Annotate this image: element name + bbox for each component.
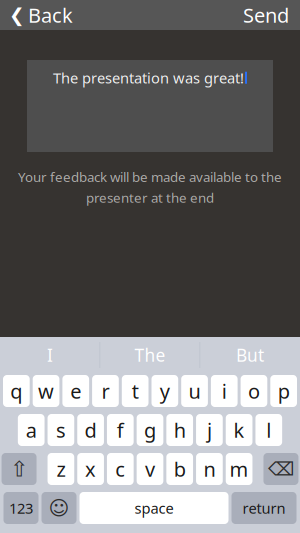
staticText: Back — [28, 2, 73, 28]
staticText: c — [115, 456, 125, 482]
staticText: ⌫ — [268, 458, 294, 480]
staticText: s — [56, 417, 66, 443]
button[interactable]: m — [226, 453, 252, 485]
button[interactable]: i — [211, 375, 238, 407]
button[interactable]: o — [241, 375, 267, 407]
button[interactable]: a — [18, 414, 45, 446]
button[interactable]: I — [0, 337, 99, 373]
staticText: But — [236, 343, 264, 366]
staticText: w — [38, 378, 54, 404]
staticText: q — [10, 378, 22, 404]
staticText: l — [266, 417, 271, 443]
button[interactable]: l — [255, 414, 282, 446]
button[interactable]: y — [151, 375, 178, 407]
button[interactable]: q — [3, 375, 30, 407]
button[interactable]: w — [33, 375, 59, 407]
staticText: return — [242, 498, 285, 518]
button[interactable]: Shift — [2, 453, 37, 485]
staticText: y — [160, 378, 170, 404]
staticText: space — [134, 498, 173, 518]
button[interactable]: Emoji — [41, 492, 76, 524]
button[interactable]: v — [137, 453, 163, 485]
button[interactable]: The — [100, 337, 199, 373]
staticText: Your feedback will be made available to … — [18, 168, 282, 186]
button[interactable]: j — [196, 414, 223, 446]
staticText: x — [85, 456, 96, 482]
button[interactable]: r — [92, 375, 119, 407]
button[interactable]: n — [196, 453, 223, 485]
button[interactable]: The presentation was great! — [27, 60, 273, 152]
staticText: h — [174, 417, 186, 443]
staticText: Send — [243, 2, 289, 28]
button[interactable]: Delete — [263, 453, 298, 485]
button[interactable]: s — [48, 414, 74, 446]
button[interactable]: space — [79, 492, 228, 524]
button[interactable]: u — [181, 375, 208, 407]
staticText: ❮ — [9, 4, 25, 26]
staticText: a — [26, 417, 37, 443]
staticText: g — [144, 417, 156, 443]
staticText: d — [85, 417, 97, 443]
staticText: p — [278, 378, 290, 404]
button[interactable]: 123 — [3, 492, 38, 524]
button[interactable]: z — [48, 453, 74, 485]
staticText: ⇧ — [10, 457, 28, 481]
button[interactable]: f — [107, 414, 134, 446]
button[interactable]: b — [166, 453, 193, 485]
button[interactable]: c — [107, 453, 134, 485]
button[interactable]: h — [166, 414, 193, 446]
staticText: z — [56, 456, 65, 482]
staticText: t — [132, 378, 139, 404]
button[interactable]: t — [122, 375, 148, 407]
staticText: j — [207, 417, 212, 443]
staticText: o — [248, 378, 260, 404]
staticText: v — [145, 456, 155, 482]
button[interactable]: k — [226, 414, 252, 446]
button[interactable]: ❮ — [0, 0, 83, 34]
button[interactable]: p — [270, 375, 297, 407]
button[interactable]: d — [77, 414, 104, 446]
staticText: I — [47, 343, 53, 366]
staticText: b — [174, 456, 186, 482]
staticText: k — [234, 417, 245, 443]
button[interactable]: But — [200, 337, 299, 373]
staticText: The presentation was great! — [53, 68, 244, 87]
button[interactable]: Send — [232, 0, 300, 34]
staticText: i — [222, 378, 227, 404]
staticText: The — [134, 343, 165, 366]
staticText: r — [101, 378, 109, 404]
button[interactable]: return — [231, 492, 296, 524]
button[interactable]: e — [62, 375, 89, 407]
staticText: presenter at the end — [86, 189, 214, 206]
button[interactable]: g — [137, 414, 163, 446]
staticText: e — [70, 378, 81, 404]
staticText: u — [189, 378, 201, 404]
staticText: 123 — [9, 498, 33, 518]
button[interactable]: x — [77, 453, 104, 485]
staticText: f — [117, 417, 124, 443]
staticText: n — [203, 456, 215, 482]
staticText: ☺ — [48, 497, 69, 519]
staticText: m — [230, 456, 249, 482]
